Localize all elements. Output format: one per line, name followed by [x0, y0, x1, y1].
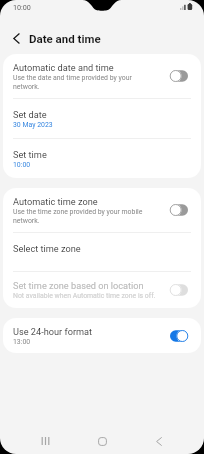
button[interactable]: Automatic date and time — [3, 54, 201, 98]
staticText: Set time zone based on location — [13, 280, 144, 291]
staticText: 10:00 — [13, 161, 31, 169]
button[interactable]: Back — [140, 428, 178, 454]
button[interactable]: Recent apps — [26, 428, 64, 454]
staticText: Set time — [13, 149, 47, 160]
staticText: Use 24-hour format — [13, 326, 93, 337]
button[interactable]: Switch off — [170, 283, 188, 297]
staticText: Set date — [13, 109, 47, 120]
staticText: Automatic date and time — [13, 62, 114, 73]
button[interactable]: Use 24-hour format — [3, 318, 201, 353]
button[interactable]: Set date — [3, 99, 201, 138]
staticText: 30 May 2023 — [13, 121, 53, 129]
staticText: Date and time — [29, 32, 101, 45]
staticText: Use the date and time provided by your n… — [13, 74, 132, 91]
button[interactable]: Select time zone — [3, 233, 201, 271]
button[interactable]: Home — [83, 428, 121, 454]
staticText: 10:00 — [13, 3, 31, 11]
button[interactable]: Switch on — [170, 329, 188, 343]
staticText: Not available when Automatic time zone i… — [13, 292, 156, 300]
staticText: Select time zone — [13, 243, 81, 254]
button[interactable]: Switch off — [170, 203, 188, 217]
button[interactable]: Automatic time zone — [3, 188, 201, 232]
button[interactable]: Back — [8, 30, 24, 46]
button[interactable]: Switch off — [170, 69, 188, 83]
staticText: 13:00 — [13, 338, 31, 346]
button[interactable]: Set time zone based on location — [3, 272, 201, 308]
staticText: Automatic time zone — [13, 196, 98, 207]
staticText: Use the time zone provided by your mobil… — [13, 208, 143, 225]
button[interactable]: Set time — [3, 139, 201, 178]
